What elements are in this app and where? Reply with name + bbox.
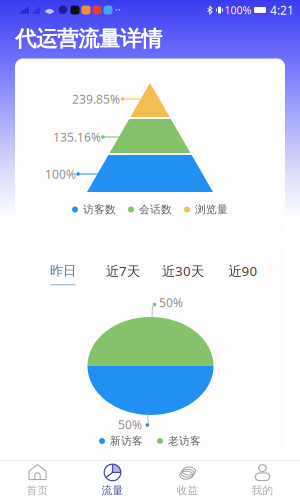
staticText: 4:21 (270, 2, 294, 18)
staticText: 首页 (26, 484, 48, 497)
staticText: 100% (224, 3, 251, 17)
staticText: 昨日 (50, 263, 76, 279)
button[interactable]: 近30天 (153, 262, 213, 286)
button[interactable]: 流量 (75, 460, 150, 500)
staticText: 流量 (101, 484, 123, 497)
staticText: 访客数 (83, 203, 116, 216)
staticText: 50% (118, 416, 142, 432)
staticText: 近30天 (162, 262, 204, 280)
staticText: 我的 (251, 484, 273, 497)
staticText: 近7天 (106, 262, 140, 280)
button[interactable]: 昨日 (33, 263, 93, 285)
staticText: ·· (114, 2, 120, 18)
staticText: 浏览量 (195, 203, 228, 216)
button[interactable]: 近7天 (93, 262, 153, 286)
button[interactable]: 收益 (150, 460, 225, 500)
staticText: 100% (45, 166, 76, 182)
button[interactable]: 我的 (225, 460, 300, 500)
staticText: 135.16% (53, 129, 101, 145)
button[interactable]: 近90 (213, 262, 273, 286)
button[interactable]: 首页 (0, 460, 75, 500)
staticText: 近90 (228, 262, 257, 280)
staticText: 会话数 (139, 203, 172, 216)
staticText: 代运营流量详情 (15, 26, 162, 52)
staticText: 收益 (176, 484, 198, 497)
staticText: 老访客 (168, 434, 201, 447)
staticText: 50% (159, 294, 183, 310)
staticText: 239.85% (72, 91, 120, 107)
staticText: 新访客 (110, 434, 143, 447)
